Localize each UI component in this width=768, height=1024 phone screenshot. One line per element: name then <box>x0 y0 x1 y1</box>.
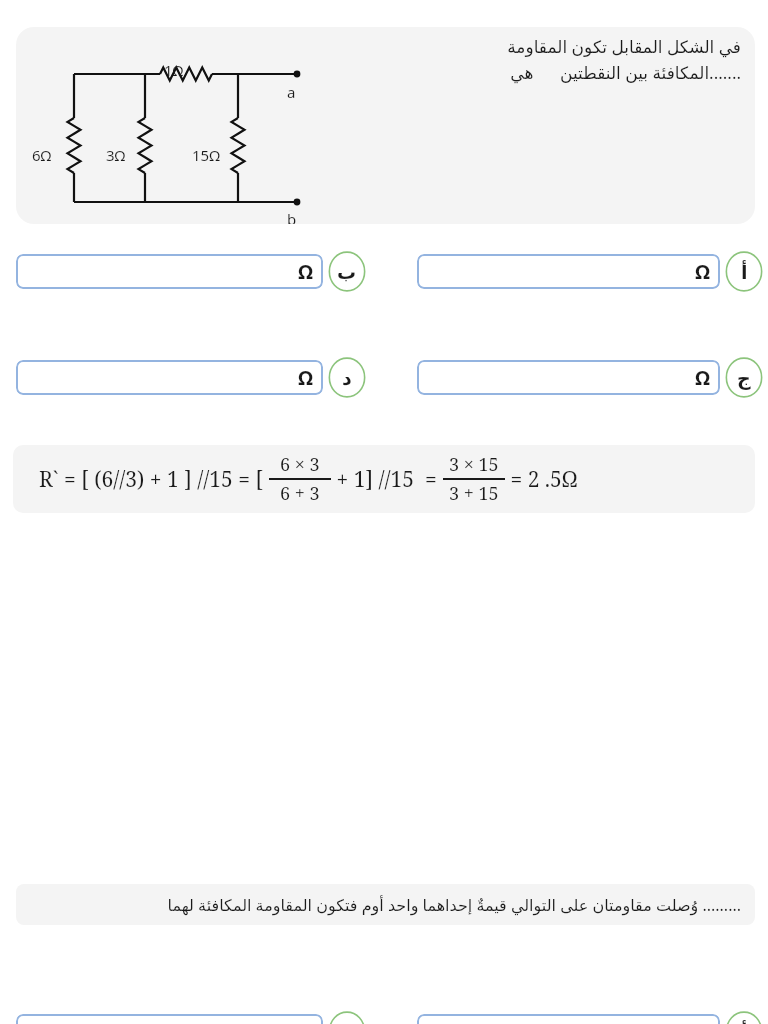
staticText: في الشكل المقابل تكون المقاومة <box>441 35 741 58</box>
button[interactable]: أ <box>723 250 765 293</box>
button[interactable]: Answer field أ <box>417 254 720 289</box>
button[interactable]: ب <box>326 250 368 293</box>
staticText: د <box>342 367 352 389</box>
button[interactable]: في الشكل المقابل تكون المقاومة <box>16 27 755 224</box>
staticText: ب <box>337 261 357 283</box>
staticText: R` = [ (6//3) + 1 ] //15 = [ <box>39 465 269 494</box>
staticText: = 2 .5Ω <box>505 465 578 494</box>
staticText: Ω <box>298 364 314 391</box>
button[interactable]: أ <box>723 1010 765 1024</box>
staticText: 6Ω <box>32 145 52 165</box>
staticText: 3Ω <box>106 145 126 165</box>
staticText: a <box>287 82 296 102</box>
staticText: وُصلت مقاومتان على التوالي قيمةٌ إحداهما… <box>30 894 741 916</box>
staticText: 6 × 3 <box>280 452 320 477</box>
button[interactable]: Answer field ب <box>16 254 323 289</box>
staticText: Ω <box>695 364 711 391</box>
button[interactable]: ج <box>723 356 765 399</box>
staticText: 3 + 15 <box>449 481 499 506</box>
staticText: Ω <box>695 258 711 285</box>
staticText: أ <box>741 1021 748 1024</box>
staticText: + 1] //15 = <box>331 465 443 494</box>
button[interactable]: وُصلت مقاومتان على التوالي قيمةٌ إحداهما… <box>16 884 755 925</box>
staticText: ج <box>737 367 751 389</box>
staticText: 6 + 3 <box>280 481 320 506</box>
staticText: b <box>287 209 297 224</box>
button[interactable]: Answer field ب <box>16 1014 323 1024</box>
button[interactable]: Answer field ج <box>417 360 720 395</box>
button[interactable]: Answer field د <box>16 360 323 395</box>
button[interactable]: Answer field أ <box>417 1014 720 1024</box>
staticText: أ <box>741 261 748 283</box>
button[interactable]: R` = [ (6//3) + 1 ] //15 = [ <box>13 445 755 513</box>
staticText: 1Ω <box>164 60 184 80</box>
staticText: المكافئة بين النقطتين هي....... <box>441 61 741 84</box>
staticText: 15Ω <box>192 145 220 165</box>
button[interactable]: ب <box>326 1010 368 1024</box>
staticText: Ω <box>298 258 314 285</box>
staticText: 3 × 15 <box>449 452 499 477</box>
button[interactable]: د <box>326 356 368 399</box>
